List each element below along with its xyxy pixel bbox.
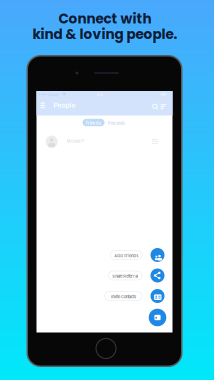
staticText: Invite Contacts bbox=[111, 294, 136, 299]
staticText: kind & loving people. bbox=[32, 25, 177, 44]
staticText: Friends bbox=[86, 121, 101, 126]
staticText: 9:41 bbox=[96, 92, 103, 97]
staticText: Add Friends bbox=[114, 253, 138, 258]
staticText: Requests bbox=[108, 121, 125, 126]
staticText: People bbox=[53, 101, 75, 109]
staticText: Connect with bbox=[58, 9, 151, 28]
staticText: Carrier bbox=[47, 93, 58, 97]
staticText: Michael P bbox=[66, 139, 84, 144]
staticText: Share Referral bbox=[112, 274, 138, 279]
